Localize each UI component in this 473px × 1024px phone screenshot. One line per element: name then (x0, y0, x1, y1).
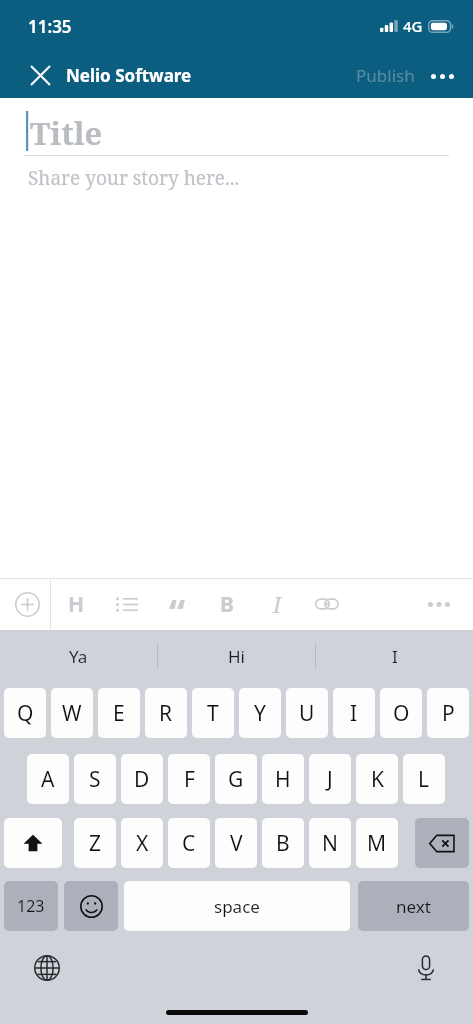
staticText: “ (169, 588, 186, 637)
button[interactable]: H (262, 754, 304, 804)
staticText: O (393, 699, 410, 728)
button[interactable]: P (427, 688, 469, 738)
button[interactable]: Backspace (415, 818, 469, 868)
staticText: next (396, 895, 431, 918)
button[interactable]: J (309, 754, 351, 804)
staticText: U (299, 699, 315, 728)
staticText: 123 (17, 895, 45, 917)
button[interactable]: next (358, 881, 469, 931)
button[interactable]: U (286, 688, 328, 738)
button[interactable]: O (380, 688, 422, 738)
staticText: F (184, 765, 195, 794)
staticText: B (276, 829, 290, 858)
button[interactable]: V (215, 818, 257, 868)
button[interactable]: Heading (54, 578, 98, 630)
staticText: Ya (69, 645, 88, 668)
staticText: Y (254, 699, 266, 728)
button[interactable]: space (124, 881, 350, 931)
staticText: Q (17, 699, 34, 728)
button[interactable]: Z (74, 818, 116, 868)
staticText: A (41, 765, 55, 794)
button[interactable]: A (27, 754, 69, 804)
button[interactable]: Dictation (403, 945, 449, 991)
button[interactable]: T (192, 688, 234, 738)
button[interactable]: M (356, 818, 398, 868)
button[interactable]: C (168, 818, 210, 868)
staticText: I (350, 699, 358, 728)
staticText: Publish (356, 64, 415, 87)
button[interactable]: Ya (0, 630, 157, 682)
button[interactable]: Quote (155, 578, 199, 630)
staticText: C (182, 829, 196, 858)
button[interactable]: X (121, 818, 163, 868)
staticText: Title (30, 112, 103, 154)
staticText: Nelio Software (66, 64, 192, 87)
staticText: I (392, 645, 398, 668)
staticText: W (62, 699, 82, 728)
staticText: K (371, 765, 384, 794)
button[interactable]: E (98, 688, 140, 738)
staticText: space (214, 895, 260, 918)
staticText: Share your story here... (28, 165, 240, 191)
button[interactable]: Italic (255, 578, 299, 630)
button[interactable]: More formatting (417, 582, 461, 626)
staticText: J (327, 765, 333, 794)
staticText: M (367, 829, 387, 858)
staticText: I (273, 589, 282, 619)
staticText: H (275, 765, 291, 794)
staticText: V (230, 829, 243, 858)
staticText: G (228, 765, 244, 794)
staticText: S (89, 765, 101, 794)
staticText: Hi (228, 645, 245, 668)
button[interactable]: Add block (4, 581, 50, 627)
button[interactable]: Close (21, 56, 59, 94)
button[interactable]: G (215, 754, 257, 804)
staticText: N (322, 829, 338, 858)
button[interactable]: D (121, 754, 163, 804)
staticText: Z (89, 829, 102, 858)
button[interactable]: K (356, 754, 398, 804)
button[interactable]: Hi (158, 630, 315, 682)
staticText: L (418, 765, 430, 794)
button[interactable]: L (403, 754, 445, 804)
staticText: B (220, 590, 234, 619)
staticText: 11:35 (28, 15, 72, 38)
button[interactable]: 123 (4, 881, 58, 931)
button[interactable]: I (316, 630, 473, 682)
button[interactable]: Q (4, 688, 46, 738)
staticText: R (159, 699, 173, 728)
button[interactable]: F (168, 754, 210, 804)
staticText: D (134, 765, 150, 794)
button[interactable]: Y (239, 688, 281, 738)
button[interactable]: Change keyboard (24, 945, 70, 991)
button[interactable]: B (262, 818, 304, 868)
button[interactable]: W (51, 688, 93, 738)
button[interactable]: S (74, 754, 116, 804)
staticText: X (136, 829, 149, 858)
button[interactable]: Shift (4, 818, 62, 868)
button[interactable]: Publish (352, 55, 419, 96)
staticText: 4G (403, 16, 423, 36)
button[interactable]: Emoji (64, 881, 118, 931)
button[interactable]: Link (305, 578, 349, 630)
button[interactable]: More options (425, 59, 459, 93)
button[interactable]: Bulleted list (105, 578, 149, 630)
button[interactable]: R (145, 688, 187, 738)
staticText: E (113, 699, 125, 728)
button[interactable]: N (309, 818, 351, 868)
staticText: T (207, 699, 219, 728)
staticText: P (442, 699, 455, 728)
button[interactable]: Bold (205, 578, 249, 630)
staticText: H (68, 590, 85, 619)
button[interactable]: I (333, 688, 375, 738)
